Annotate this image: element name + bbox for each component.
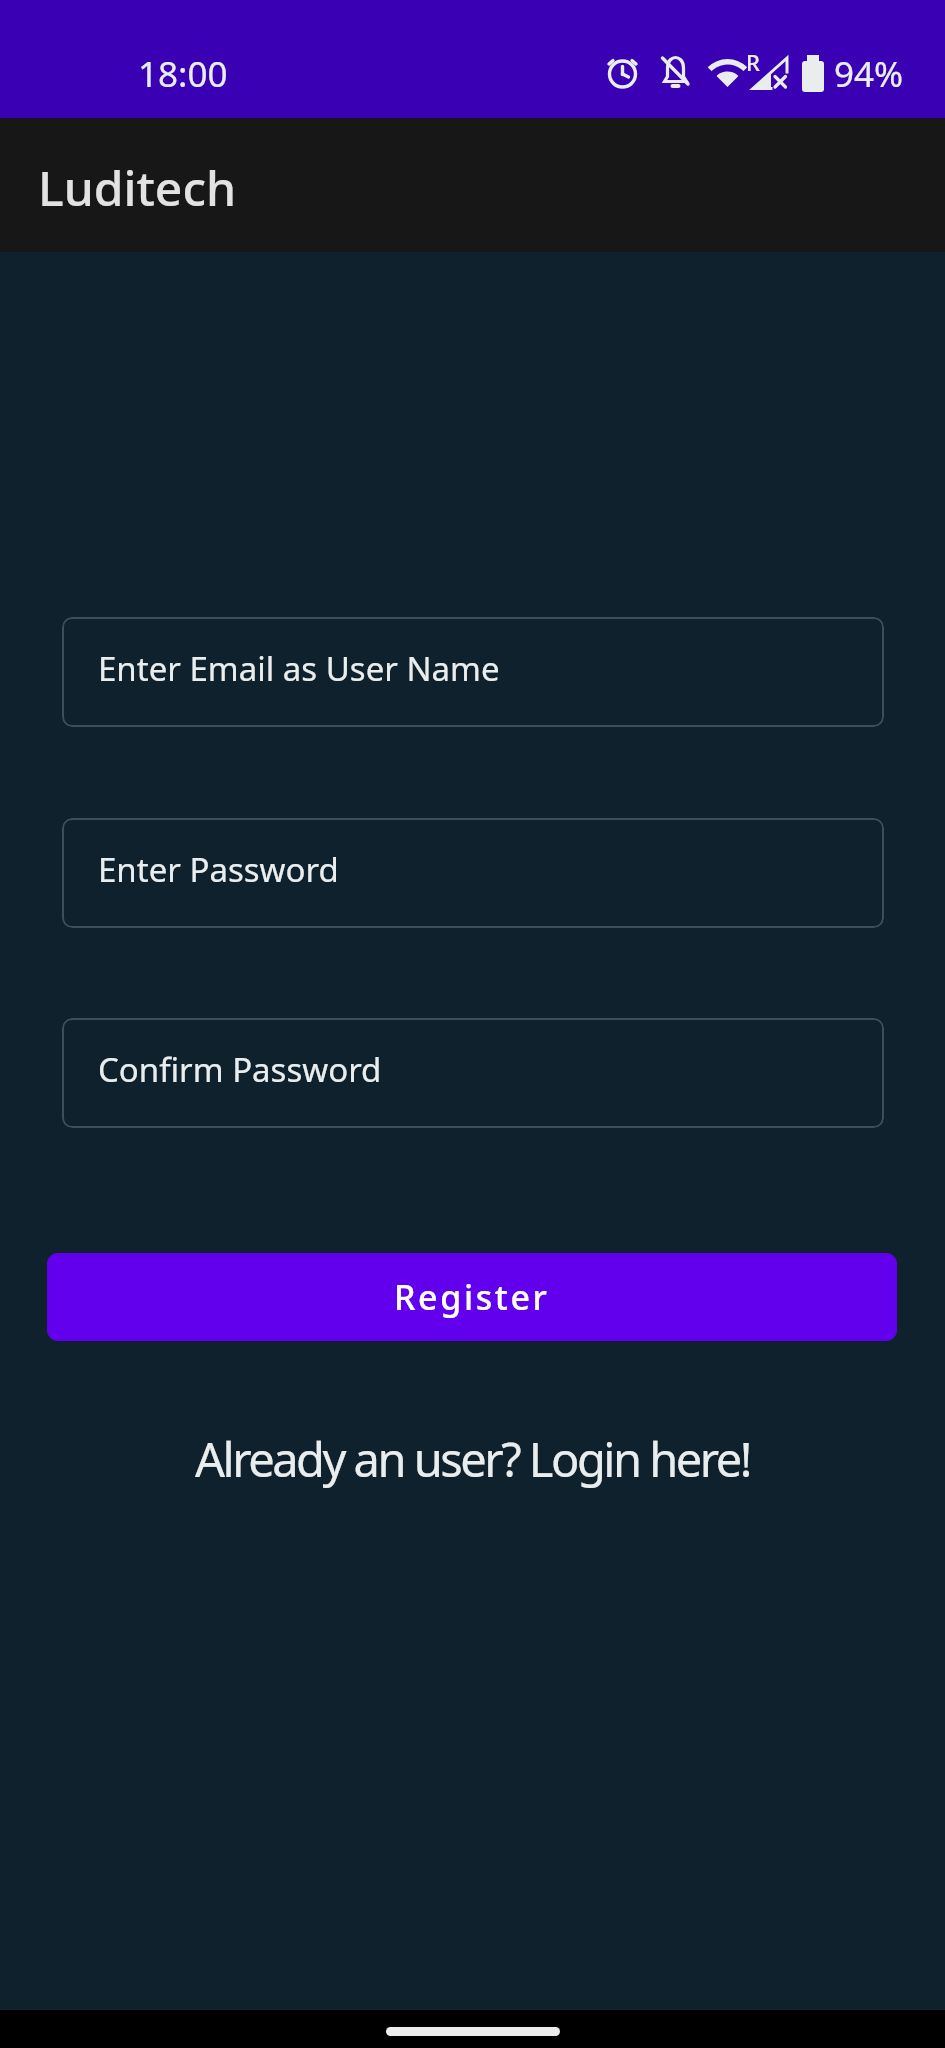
- staticText: Already an user? Login here!: [195, 1427, 750, 1491]
- button[interactable]: Already an user? Login here!: [0, 1427, 945, 1491]
- button[interactable]: Enter Email as User Name: [62, 617, 884, 727]
- staticText: R: [746, 47, 760, 77]
- button[interactable]: Register: [47, 1253, 897, 1341]
- button[interactable]: Enter Password: [62, 818, 884, 928]
- staticText: Register: [394, 1274, 550, 1320]
- staticText: Enter Password: [98, 847, 339, 892]
- staticText: 18:00: [138, 50, 228, 98]
- staticText: Luditech: [38, 155, 237, 220]
- button[interactable]: Confirm Password: [62, 1018, 884, 1128]
- staticText: Enter Email as User Name: [98, 646, 500, 691]
- staticText: 94%: [834, 50, 904, 98]
- staticText: Confirm Password: [98, 1047, 382, 1092]
